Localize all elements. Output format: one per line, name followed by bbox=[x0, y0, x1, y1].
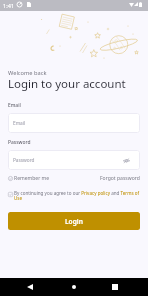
staticText: Email bbox=[13, 120, 26, 126]
button[interactable]: Recent apps bbox=[106, 278, 124, 296]
staticText: 1:41 bbox=[3, 2, 15, 10]
button[interactable] bbox=[8, 192, 13, 197]
staticText: Email bbox=[8, 102, 21, 109]
staticText: Login bbox=[65, 217, 83, 226]
staticText: Welcome back bbox=[8, 69, 47, 77]
button[interactable]: Remember me bbox=[8, 175, 50, 182]
button[interactable]: Login bbox=[8, 212, 140, 230]
staticText: Password bbox=[8, 139, 31, 146]
button[interactable]: Show password bbox=[123, 158, 130, 163]
staticText: By continuing you agree to our Privacy p… bbox=[14, 190, 140, 202]
staticText: Login to your account bbox=[8, 76, 126, 92]
staticText: Password bbox=[13, 157, 35, 163]
button[interactable]: Forgot password bbox=[100, 175, 140, 182]
staticText: Remember me bbox=[14, 175, 50, 182]
button[interactable]: Email bbox=[8, 113, 140, 133]
button[interactable]: Home bbox=[65, 278, 83, 296]
button[interactable]: Back bbox=[21, 278, 39, 296]
button[interactable]: Password bbox=[8, 150, 140, 170]
